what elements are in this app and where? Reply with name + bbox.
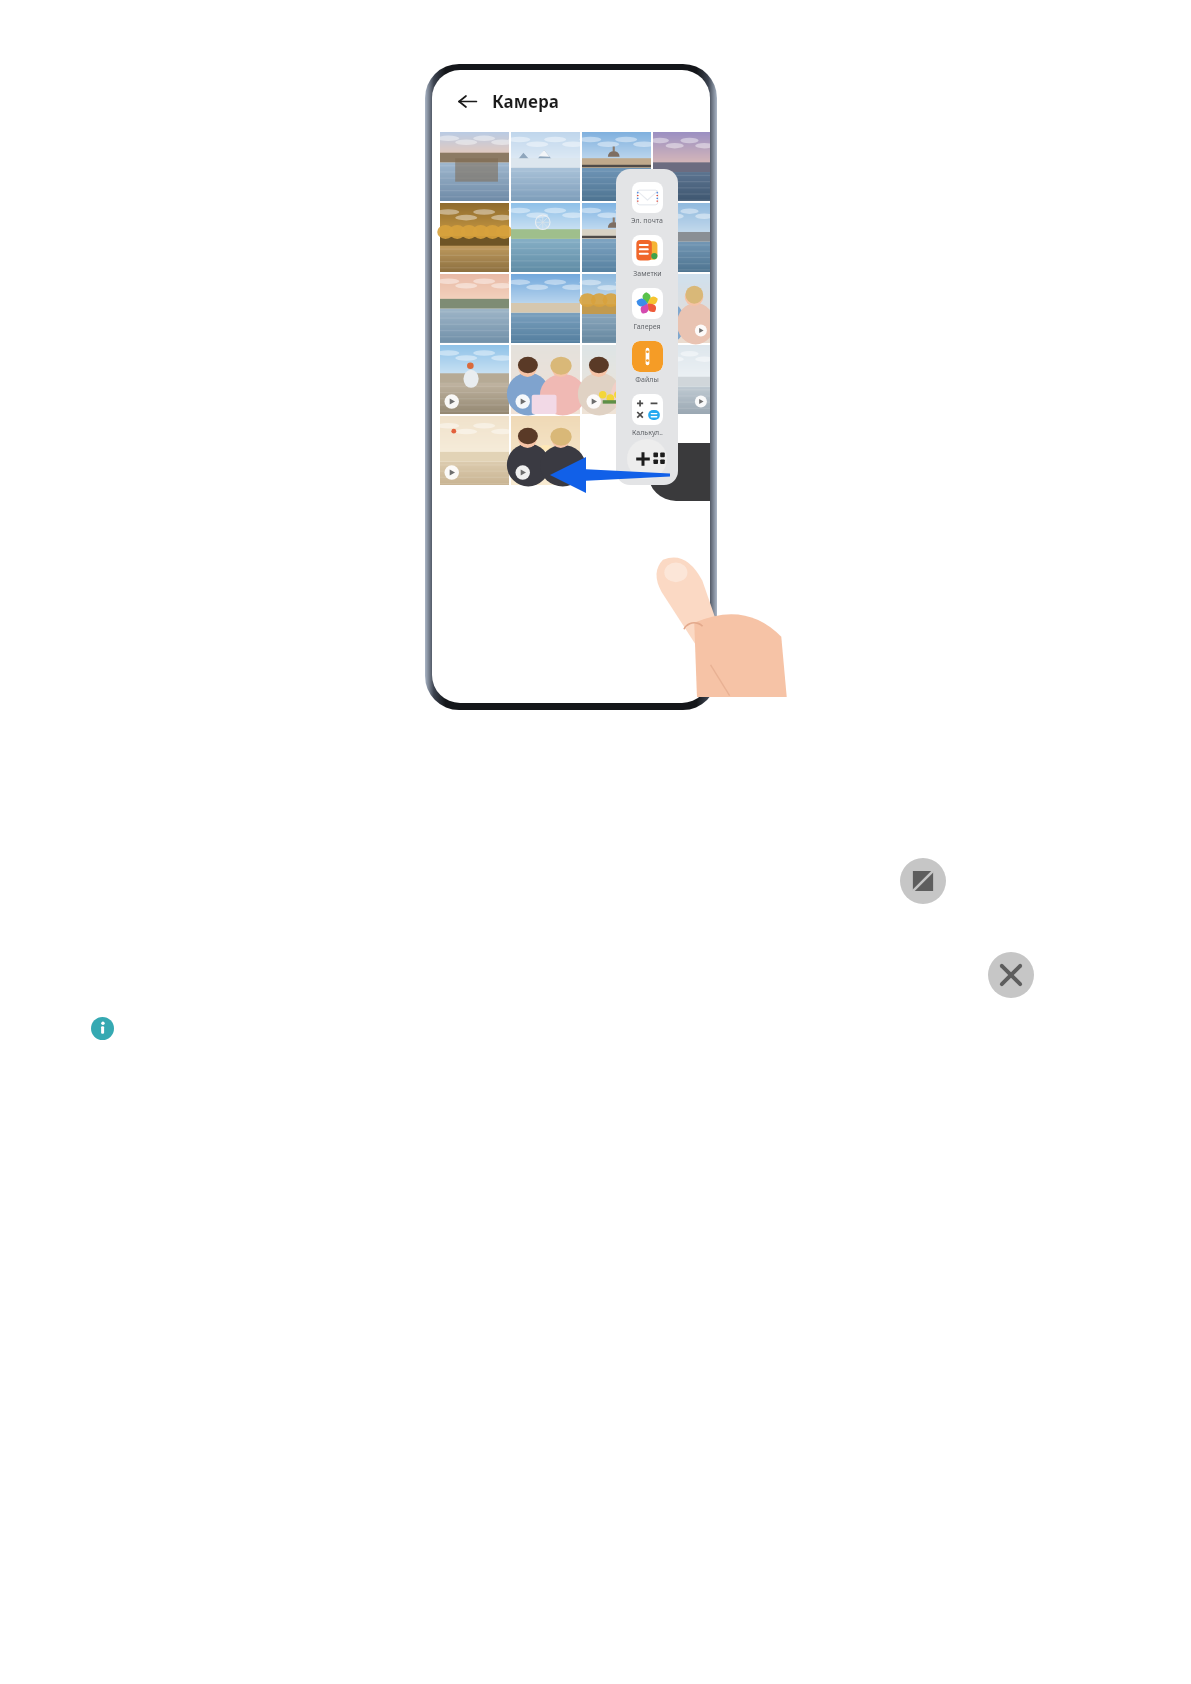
button[interactable]: Эл. почта (616, 175, 678, 228)
button[interactable]: Фото (582, 132, 651, 201)
button[interactable]: Фото (653, 203, 710, 272)
button[interactable]: Добавить приложение (627, 439, 667, 479)
button[interactable]: Фото (653, 345, 710, 414)
button[interactable]: Информация (91, 1017, 114, 1040)
button[interactable]: Фото (511, 274, 580, 343)
button[interactable]: Фото (511, 203, 580, 272)
button[interactable]: Фото (440, 274, 509, 343)
button[interactable]: Фото (582, 274, 651, 343)
button[interactable]: Калькул.. (616, 387, 678, 440)
button[interactable]: Фото (440, 416, 509, 485)
button[interactable]: Назад (454, 88, 480, 114)
staticText: Галерея (633, 322, 661, 332)
button[interactable]: Фото (511, 345, 580, 414)
button[interactable]: Фото (440, 132, 509, 201)
button[interactable]: Фото (582, 345, 651, 414)
staticText: Файлы (635, 375, 659, 385)
button[interactable]: Закрыть (988, 952, 1034, 998)
staticText: Камера (492, 90, 559, 113)
button[interactable]: Фото (511, 132, 580, 201)
button[interactable]: Фото (582, 203, 651, 272)
staticText: Эл. почта (631, 216, 663, 226)
button[interactable]: Файлы (616, 334, 678, 387)
button[interactable]: Фото (440, 203, 509, 272)
button[interactable]: Изображение недоступно (900, 858, 946, 904)
button[interactable]: Фото (653, 274, 710, 343)
button[interactable]: Фото (440, 345, 509, 414)
staticText: Заметки (633, 269, 662, 279)
button[interactable]: Фото (653, 132, 710, 201)
button[interactable]: Заметки (616, 228, 678, 281)
button[interactable]: Галерея (616, 281, 678, 334)
staticText: Калькул.. (632, 428, 663, 438)
button[interactable]: Фото (511, 416, 580, 485)
